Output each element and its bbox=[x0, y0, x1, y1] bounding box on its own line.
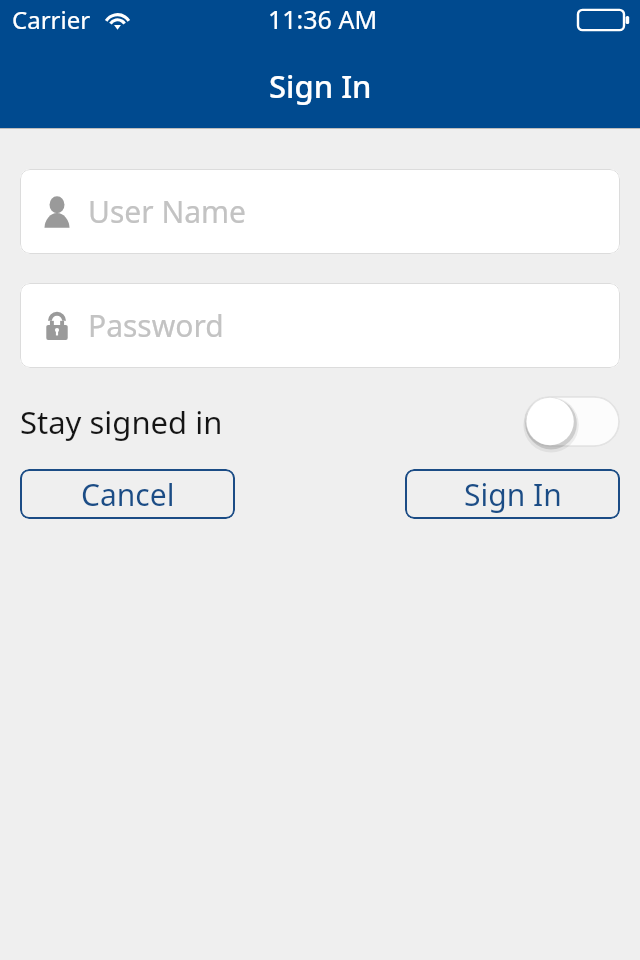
staticText: User Name bbox=[88, 191, 247, 232]
staticText: Stay signed in bbox=[20, 401, 223, 443]
button[interactable]: Sign In bbox=[405, 469, 620, 519]
staticText: 11:36 AM bbox=[268, 2, 378, 36]
button[interactable]: Cancel bbox=[20, 469, 235, 519]
staticText: Carrier bbox=[12, 3, 91, 36]
staticText: Sign In bbox=[269, 65, 372, 107]
button[interactable]: Stay signed in bbox=[524, 396, 620, 447]
button[interactable]: User Name bbox=[20, 169, 620, 254]
button[interactable]: Password bbox=[20, 283, 620, 368]
staticText: Sign In bbox=[464, 474, 562, 515]
staticText: Password bbox=[88, 305, 224, 346]
staticText: Cancel bbox=[81, 474, 175, 515]
